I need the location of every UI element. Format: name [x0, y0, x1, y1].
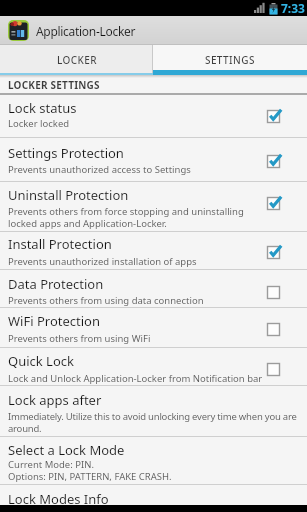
staticText: Lock and Unlock Application-Locker from … [8, 372, 263, 385]
staticText: 7:33 [281, 0, 305, 16]
staticText: Prevents others from using WiFi [8, 332, 151, 345]
staticText: Lock Modes Info [8, 490, 109, 505]
staticText: SETTINGS [205, 53, 255, 67]
staticText: Prevents unauthorized installation of ap… [8, 255, 197, 268]
button[interactable]: Data Protection [0, 270, 307, 308]
staticText: Locker locked [8, 117, 70, 130]
staticText: Uninstall Protection [8, 186, 129, 204]
button[interactable]: Quick Lock [0, 348, 307, 386]
staticText: LOCKER SETTINGS [8, 78, 100, 92]
staticText: Quick Lock [8, 352, 74, 370]
button[interactable]: Install Protection [0, 232, 307, 270]
staticText: Settings Protection [8, 144, 124, 162]
staticText: Prevents unauthorized access to Settings [8, 163, 191, 176]
button[interactable]: Uninstall Protection [0, 182, 307, 232]
staticText: Prevents others from using data connecti… [8, 294, 204, 307]
staticText: Current Mode: PIN. Options: PIN, PATTERN… [8, 458, 172, 482]
button[interactable]: Select a Lock Mode [0, 437, 307, 485]
staticText: WiFi Protection [8, 312, 100, 330]
button[interactable]: Lock Modes Info [0, 485, 307, 505]
button[interactable]: Settings Protection [0, 138, 307, 182]
staticText: Lock apps after [8, 391, 102, 409]
button[interactable]: Lock apps after [0, 386, 307, 437]
button[interactable]: WiFi Protection [0, 308, 307, 348]
staticText: Immediately. Utilize this to avoid unloc… [8, 410, 297, 434]
staticText: Prevents others from force stopping and … [8, 205, 244, 229]
button[interactable]: SETTINGS [153, 45, 307, 75]
staticText: LOCKER [57, 53, 97, 67]
staticText: Install Protection [8, 235, 112, 253]
staticText: Data Protection [8, 275, 104, 293]
button[interactable]: LOCKER [0, 45, 153, 75]
staticText: Select a Lock Mode [8, 441, 125, 459]
button[interactable]: Lock status [0, 95, 307, 138]
staticText: Lock status [8, 99, 77, 117]
button[interactable]: Application-Locker [0, 16, 136, 45]
staticText: Application-Locker [36, 23, 136, 39]
